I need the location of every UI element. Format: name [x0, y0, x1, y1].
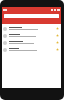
- button[interactable]: [2, 32, 61, 39]
- button[interactable]: [2, 25, 61, 32]
- button[interactable]: [2, 39, 61, 46]
- button[interactable]: [2, 46, 61, 53]
